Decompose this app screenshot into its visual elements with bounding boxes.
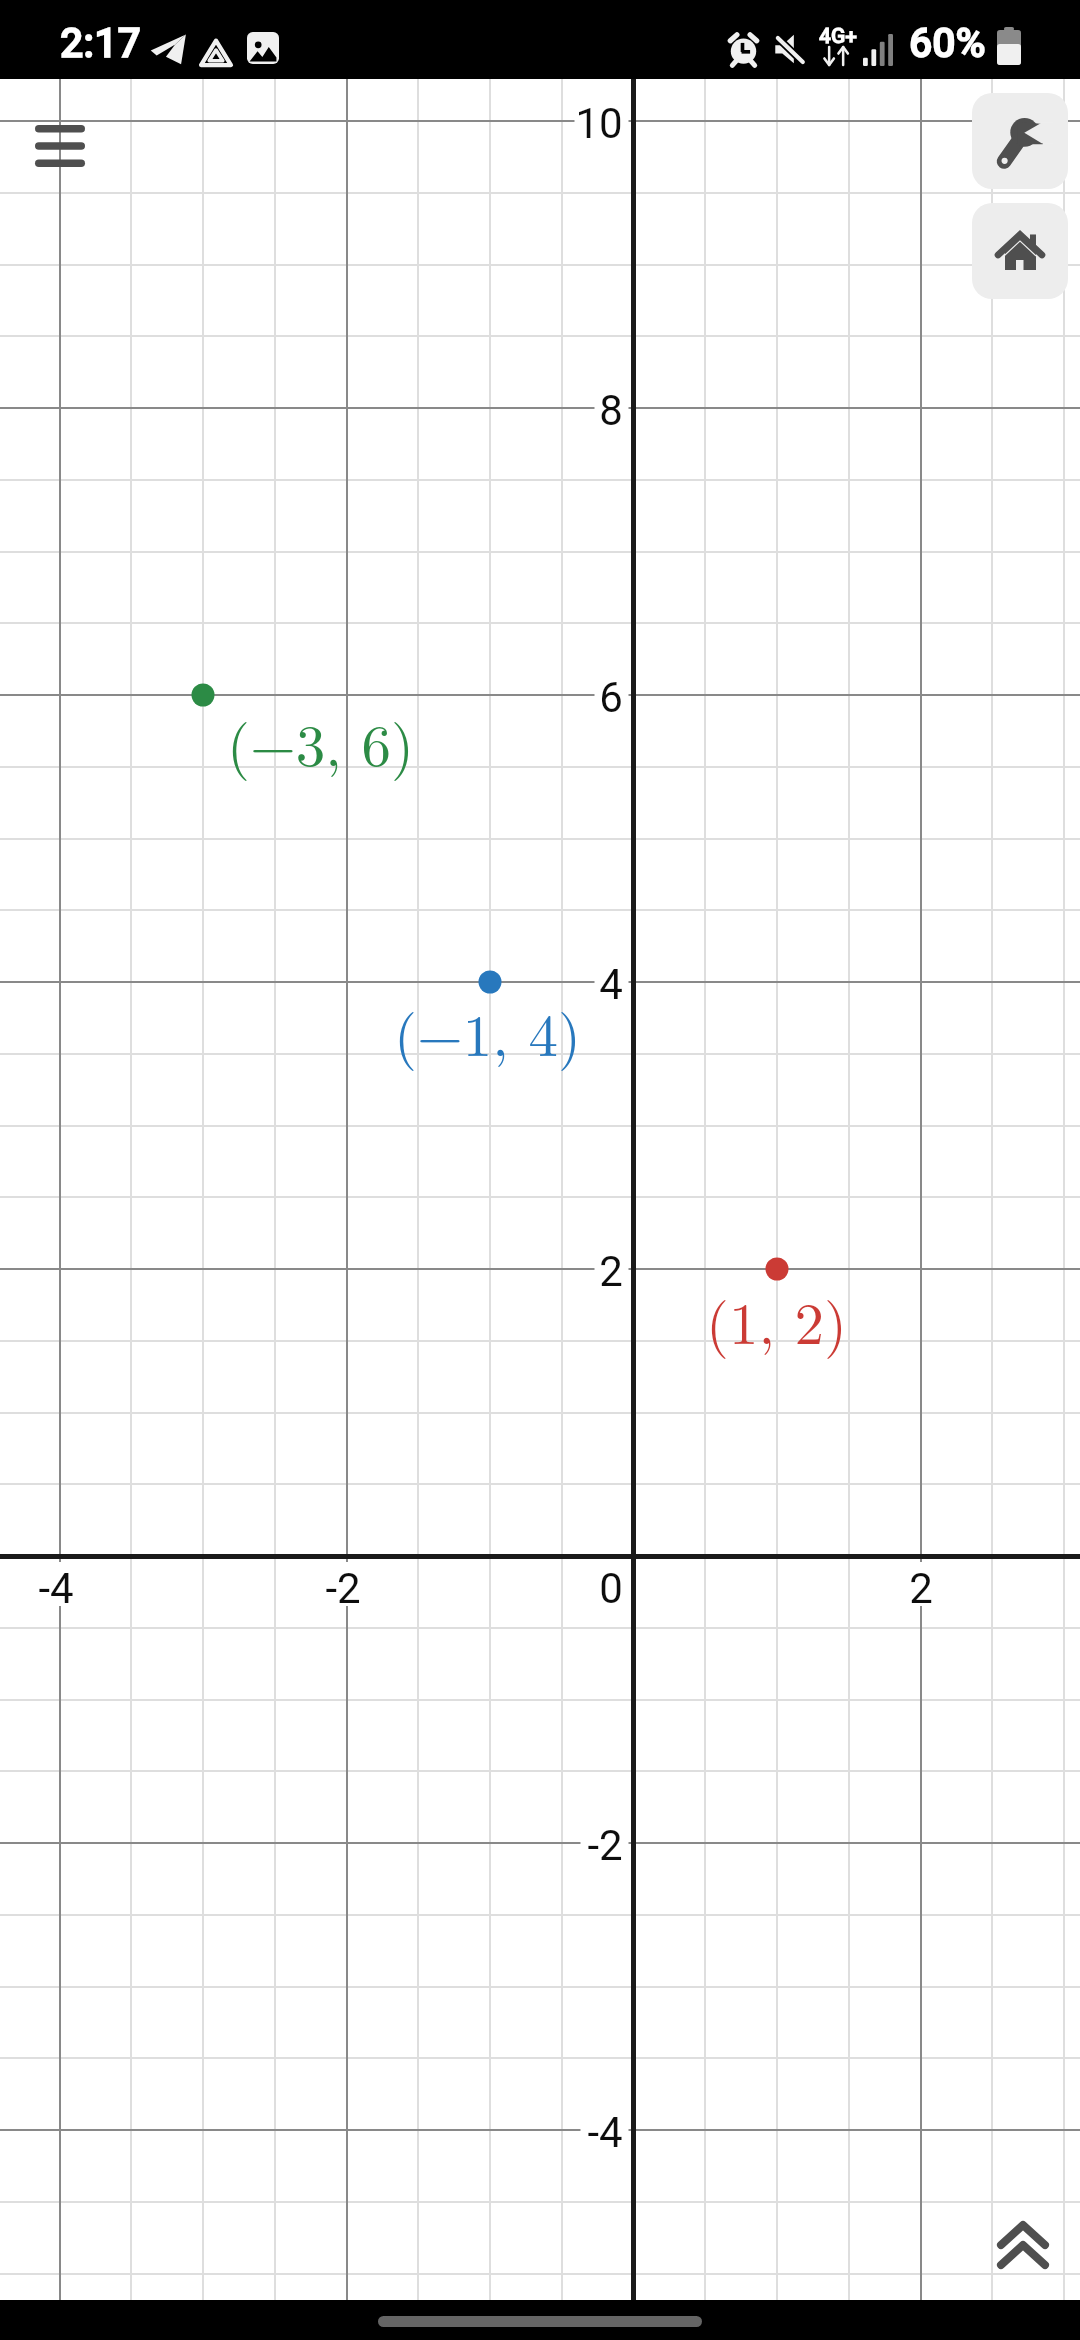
staticText: 0: [599, 1564, 623, 1613]
staticText: 4G+: [819, 24, 857, 49]
button[interactable]: Home: [972, 203, 1068, 299]
staticText: -2: [587, 1821, 623, 1870]
staticText: 2:17: [60, 19, 141, 67]
staticText: -4: [38, 1564, 74, 1613]
staticText: -4: [587, 2108, 623, 2157]
staticText: (−3, 6): [227, 700, 414, 784]
staticText: 4: [599, 960, 623, 1009]
staticText: 60%: [909, 19, 986, 67]
staticText: (1, 2): [706, 1278, 847, 1362]
staticText: (−1, 4): [394, 990, 581, 1074]
staticText: -2: [325, 1564, 361, 1613]
button[interactable]: Settings: [972, 93, 1068, 189]
staticText: 2: [909, 1564, 933, 1613]
staticText: 10: [575, 99, 623, 148]
button[interactable]: Expand keypad: [968, 2195, 1078, 2295]
staticText: 8: [599, 386, 623, 435]
staticText: 2: [599, 1247, 623, 1296]
button[interactable]: Menu: [0, 96, 120, 196]
staticText: 6: [599, 673, 623, 722]
